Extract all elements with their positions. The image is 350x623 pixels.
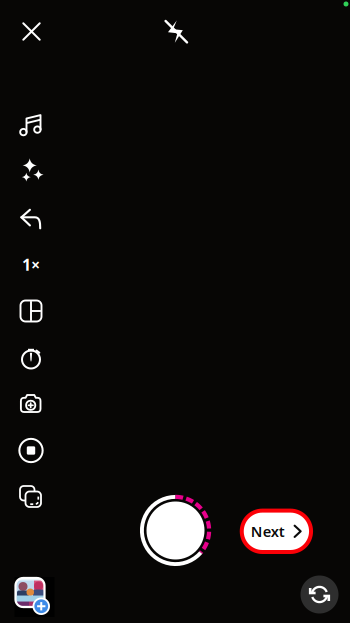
- button[interactable]: 1×: [9, 243, 53, 285]
- button[interactable]: Gallery: [14, 577, 54, 617]
- button[interactable]: Flash off: [153, 9, 197, 53]
- button[interactable]: Align: [9, 429, 53, 471]
- button[interactable]: Effects: [9, 150, 53, 192]
- staticText: 1×: [22, 254, 40, 275]
- button[interactable]: Flip camera: [297, 572, 341, 616]
- button[interactable]: Close: [9, 9, 53, 53]
- button[interactable]: Undo: [9, 197, 53, 239]
- button[interactable]: Layout: [9, 290, 53, 332]
- button[interactable]: Add music: [9, 104, 53, 146]
- button[interactable]: Timer: [9, 336, 53, 378]
- button[interactable]: Layers: [9, 476, 53, 518]
- button[interactable]: Record: [136, 491, 214, 569]
- button[interactable]: Next: [242, 511, 311, 552]
- staticText: Next: [251, 522, 285, 541]
- button[interactable]: Green screen: [9, 383, 53, 425]
